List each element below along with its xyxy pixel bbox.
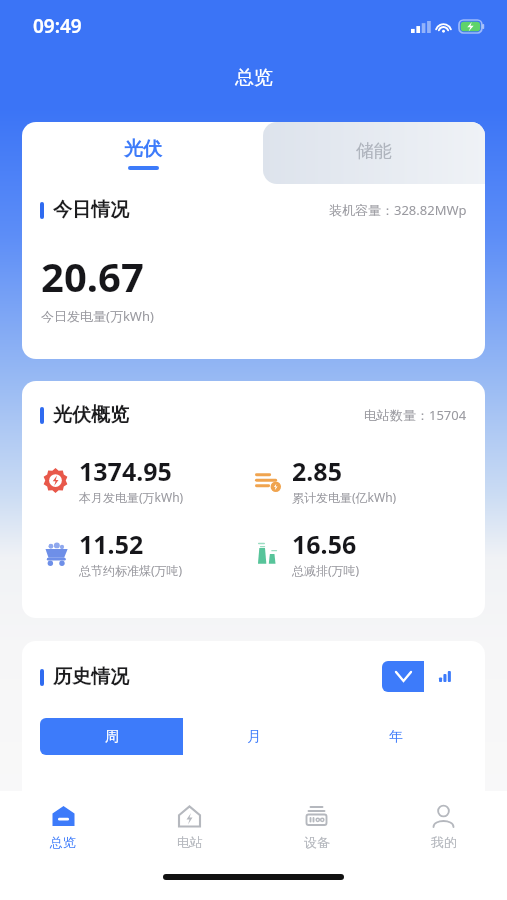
staticText: 累计发电量(亿kWh) — [292, 489, 397, 505]
staticText: 年 — [389, 728, 403, 746]
button[interactable]: 储能 — [263, 122, 485, 184]
button[interactable]: 设备 — [253, 791, 380, 861]
staticText: 光伏概览 — [53, 403, 129, 427]
staticText: 2.85 — [292, 454, 342, 488]
staticText: 20.67 — [41, 249, 144, 303]
staticText: 月 — [247, 728, 261, 746]
staticText: 光伏 — [124, 137, 162, 161]
staticText: 1374.95 — [79, 454, 172, 488]
staticText: 今日情况 — [53, 198, 129, 222]
button[interactable]: 电站 — [126, 791, 253, 861]
staticText: 11.52 — [79, 527, 144, 561]
staticText: 设备 — [304, 834, 330, 850]
staticText: 电站数量：15704 — [364, 406, 467, 424]
staticText: 总节约标准煤(万吨) — [79, 562, 183, 578]
staticText: 今日发电量(万kWh) — [41, 307, 154, 325]
button[interactable]: 月 — [183, 718, 325, 755]
staticText: 09:49 — [33, 13, 82, 39]
staticText: 总览 — [235, 66, 273, 90]
button[interactable]: 总览 — [0, 791, 126, 861]
button[interactable]: 光伏 — [22, 122, 263, 184]
button[interactable]: 周 — [40, 718, 183, 755]
staticText: 储能 — [356, 140, 392, 163]
button[interactable]: 我的 — [380, 791, 507, 861]
button[interactable]: Bar chart — [424, 661, 467, 692]
button[interactable]: 年 — [325, 718, 467, 755]
staticText: 我的 — [431, 834, 457, 850]
staticText: 周 — [105, 728, 119, 746]
staticText: 总减排(万吨) — [292, 562, 360, 578]
staticText: 电站 — [177, 834, 203, 850]
staticText: 总览 — [50, 834, 76, 850]
staticText: 16.56 — [292, 527, 357, 561]
button[interactable]: Line chart — [382, 661, 424, 692]
staticText: 本月发电量(万kWh) — [79, 489, 184, 505]
staticText: 装机容量：328.82MWp — [329, 201, 467, 219]
staticText: 历史情况 — [53, 665, 129, 689]
